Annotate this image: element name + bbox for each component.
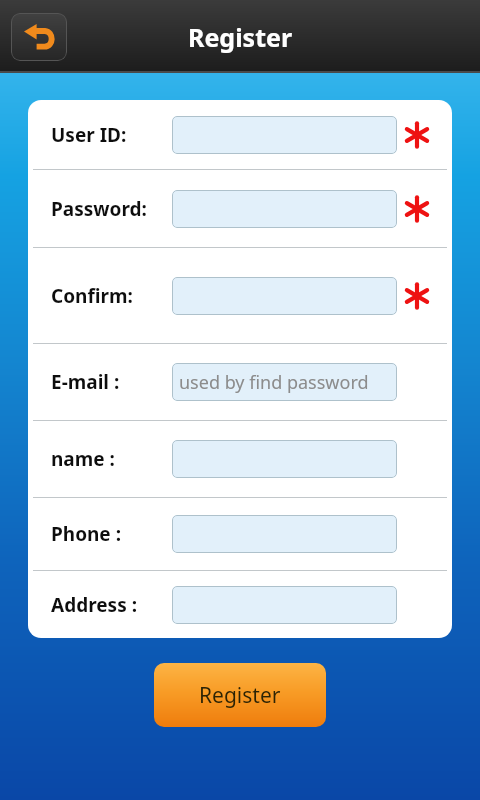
staticText: Phone :: [51, 521, 121, 547]
staticText: Confirm:: [51, 283, 133, 309]
staticText: User ID:: [51, 122, 127, 148]
button[interactable]: Phone :: [28, 498, 452, 570]
staticText: Register: [199, 681, 281, 710]
button[interactable]: name :: [28, 421, 452, 497]
staticText: E-mail :: [51, 369, 120, 395]
button[interactable]: User ID:: [28, 100, 452, 169]
staticText: Password:: [51, 196, 147, 222]
staticText: used by find password: [179, 370, 369, 395]
staticText: Address :: [51, 592, 137, 618]
button[interactable]: Confirm:: [28, 248, 452, 343]
button[interactable]: Address :: [28, 571, 452, 638]
staticText: Register: [188, 20, 293, 54]
staticText: name :: [51, 446, 115, 472]
button[interactable]: E-mail :: [28, 344, 452, 420]
button[interactable]: Password:: [28, 170, 452, 247]
button[interactable]: Back: [11, 13, 67, 61]
button[interactable]: Register: [154, 663, 326, 727]
